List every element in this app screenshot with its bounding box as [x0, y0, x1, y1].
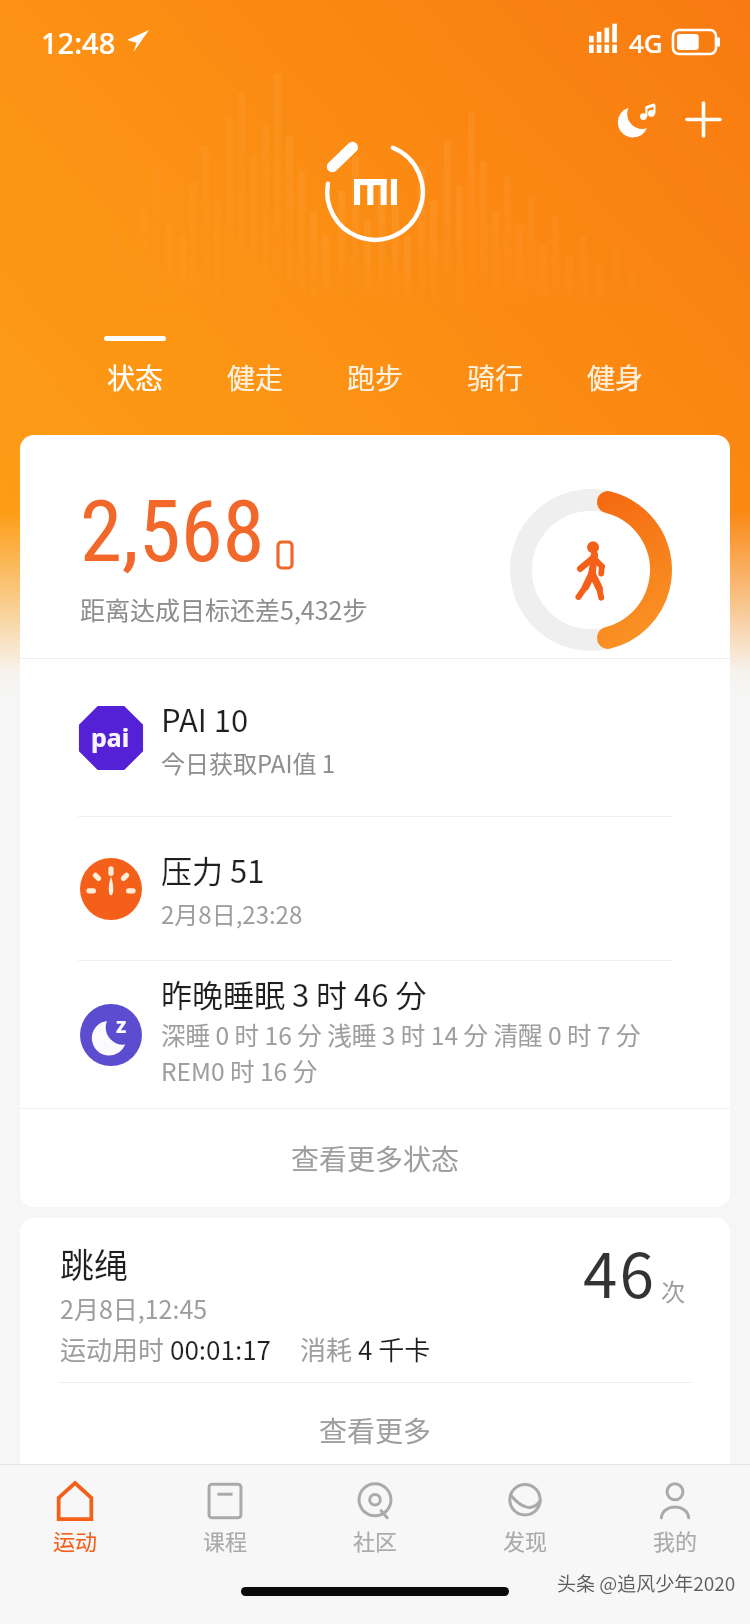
staticText: 00:01:17 — [170, 1330, 272, 1368]
button[interactable]: 状态 — [75, 333, 195, 398]
button[interactable]: 骑行 — [435, 333, 555, 398]
staticText: 头条 @追风少年2020 — [557, 1569, 736, 1597]
staticText: 运动用时 — [60, 1330, 170, 1368]
staticText: 发现 — [503, 1524, 548, 1556]
staticText: 2月8日,23:28 — [161, 896, 303, 931]
staticText: 压力 51 — [161, 847, 265, 892]
staticText: 跑步 — [347, 357, 404, 398]
button[interactable]: 发现 — [450, 1465, 600, 1556]
staticText: 课程 — [203, 1524, 248, 1556]
button[interactable]: pai — [20, 659, 730, 816]
button[interactable]: Sleep music — [606, 88, 668, 150]
button[interactable]: 查看更多状态 — [20, 1109, 730, 1207]
staticText: 4G — [629, 25, 663, 60]
staticText: 深睡 0 时 16 分 浅睡 3 时 14 分 清醒 0 时 7 分 — [161, 1017, 641, 1052]
staticText: 运动 — [53, 1524, 98, 1556]
staticText: 查看更多 — [319, 1410, 432, 1451]
staticText: pai — [91, 720, 130, 754]
staticText: 我的 — [653, 1524, 698, 1556]
staticText: 12:48 — [41, 23, 116, 62]
staticText: 次 — [661, 1273, 685, 1308]
staticText: 昨晚睡眠 3 时 46 分 — [161, 971, 427, 1016]
staticText: 跳绳 — [60, 1239, 128, 1288]
button[interactable]: 压力 51 — [20, 817, 730, 960]
staticText: 今日获取PAI值 1 — [161, 745, 336, 780]
staticText: 健身 — [587, 357, 644, 398]
staticText: 社区 — [353, 1524, 398, 1556]
staticText: 2月8日,12:45 — [60, 1290, 208, 1326]
button[interactable]: Add — [672, 88, 734, 150]
button[interactable]: 健身 — [555, 333, 675, 398]
staticText: 状态 — [107, 357, 164, 398]
staticText: 46 — [583, 1226, 656, 1316]
button[interactable]: 健走 — [195, 333, 315, 398]
button[interactable]: 查看更多 — [20, 1383, 730, 1478]
button[interactable]: 运动 — [0, 1465, 150, 1556]
staticText: 2,568 — [80, 482, 265, 582]
button[interactable]: 课程 — [150, 1465, 300, 1556]
staticText: 查看更多状态 — [291, 1138, 460, 1179]
button[interactable]: 跑步 — [315, 333, 435, 398]
staticText: 健走 — [227, 357, 284, 398]
staticText: REM0 时 16 分 — [161, 1053, 318, 1088]
staticText: 4 千卡 — [358, 1330, 431, 1368]
staticText: z — [116, 1011, 127, 1040]
button[interactable]: 跳绳 — [20, 1218, 730, 1382]
staticText: PAI 10 — [161, 696, 249, 741]
button[interactable]: z — [20, 961, 730, 1108]
staticText: 距离达成目标还差5,432步 — [80, 591, 368, 627]
staticText: 消耗 — [300, 1330, 358, 1368]
button[interactable]: 社区 — [300, 1465, 450, 1556]
staticText: 骑行 — [467, 357, 524, 398]
button[interactable]: 我的 — [600, 1465, 750, 1556]
